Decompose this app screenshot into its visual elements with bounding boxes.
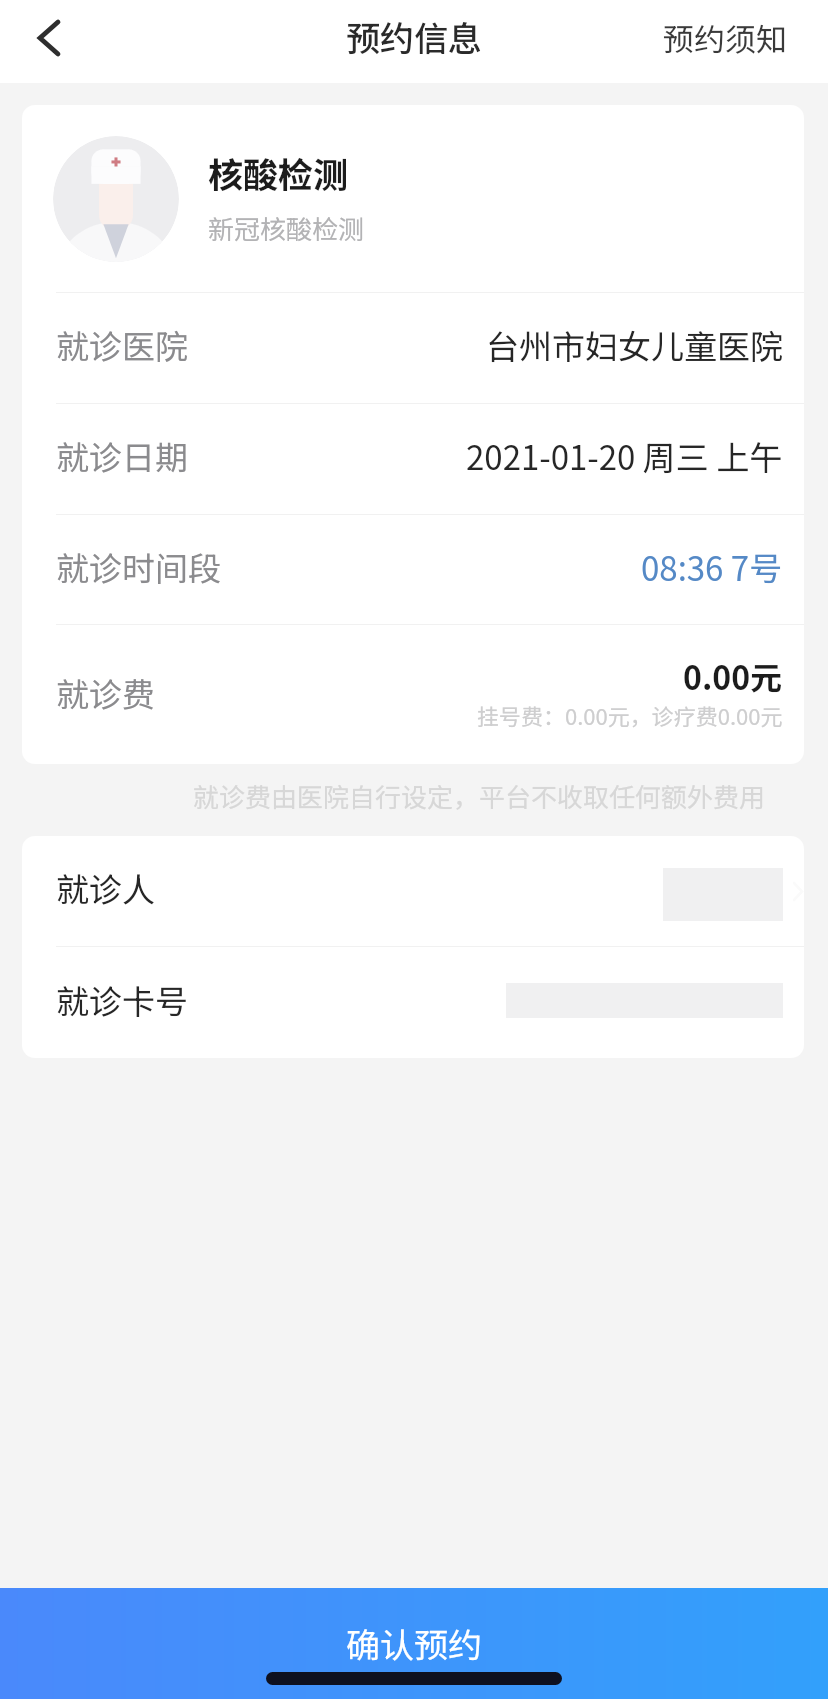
button[interactable]: 就诊人 — [22, 836, 804, 946]
staticText: 0.00元 — [683, 653, 783, 699]
staticText: 就诊费由医院自行设定，平台不收取任何额外费用 — [193, 777, 766, 815]
staticText: 08:36 7号 — [641, 543, 783, 591]
staticText: 新冠核酸检测 — [208, 209, 365, 247]
staticText: 核酸检测 — [208, 147, 349, 198]
staticText: 2021-01-20 周三 上午 — [466, 432, 783, 480]
staticText: 就诊卡号 — [56, 976, 188, 1024]
staticText: 就诊人 — [56, 864, 155, 912]
staticText: 就诊费 — [56, 669, 155, 717]
button[interactable]: Back — [0, 0, 92, 83]
staticText: 预约须知 — [663, 15, 787, 60]
staticText: 就诊时间段 — [56, 543, 221, 591]
staticText: 挂号费：0.00元，诊疗费0.00元 — [477, 699, 783, 731]
staticText: 就诊医院 — [56, 321, 188, 369]
staticText: 就诊日期 — [56, 432, 188, 480]
staticText: 预约信息 — [346, 12, 482, 61]
staticText: 确认预约 — [346, 1619, 482, 1668]
button[interactable]: 确认预约 — [0, 1588, 828, 1699]
staticText: 台州市妇女儿童医院 — [486, 321, 783, 369]
button[interactable]: 预约须知 — [618, 0, 828, 83]
button[interactable]: 就诊卡号 — [22, 947, 804, 1058]
